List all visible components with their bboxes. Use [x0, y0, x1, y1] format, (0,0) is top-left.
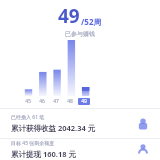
staticText: 49 — [81, 98, 87, 105]
staticText: 48 — [67, 98, 73, 105]
staticText: 46 — [39, 98, 45, 105]
button[interactable]: 已经撸入 61 笔 — [0, 109, 160, 138]
staticText: 49 — [58, 3, 80, 29]
staticText: /52周 — [81, 16, 102, 27]
other: Withdraw detail — [135, 142, 151, 158]
staticText: 累计提现 160.18 元 — [11, 149, 76, 159]
staticText: 47 — [53, 98, 59, 105]
staticText: 45 — [25, 98, 31, 105]
staticText: 累计获得收益 2042.34 元 — [11, 123, 96, 133]
staticText: 已经撸入 61 笔 — [11, 114, 45, 121]
other: Earnings detail — [135, 116, 151, 132]
staticText: 已参与赚钱 — [65, 30, 95, 38]
staticText: 目标 45 张剩余额度 — [11, 140, 55, 147]
button[interactable]: 目标 45 张剩余额度 — [0, 139, 160, 160]
